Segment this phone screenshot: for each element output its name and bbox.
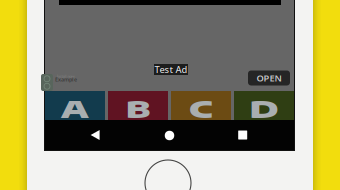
- button[interactable]: OPEN: [248, 70, 290, 85]
- staticText: Install now: [56, 73, 74, 79]
- staticText: B: [127, 91, 148, 126]
- staticText: D: [251, 91, 276, 126]
- button[interactable]: Back: [79, 120, 113, 150]
- staticText: Example: [55, 76, 77, 83]
- button[interactable]: Recent apps: [226, 120, 260, 150]
- staticText: Test Ad: [154, 63, 187, 76]
- button[interactable]: Home button: [145, 160, 191, 190]
- button[interactable]: Home: [152, 120, 186, 150]
- staticText: OPEN: [256, 72, 281, 84]
- staticText: C: [190, 91, 211, 126]
- staticText: A: [62, 91, 87, 126]
